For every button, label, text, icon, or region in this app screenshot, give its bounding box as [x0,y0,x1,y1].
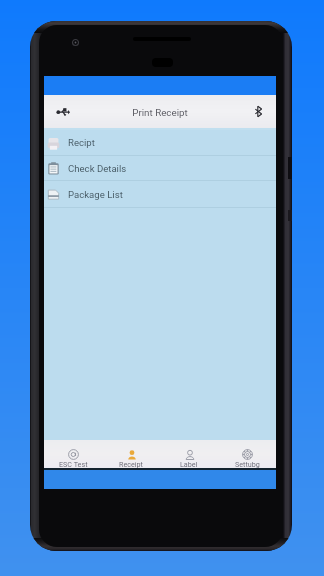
button[interactable]: Receipt [102,440,160,468]
button[interactable]: Package List [44,181,276,207]
staticText: Recipt [68,137,95,148]
staticText: ESC Test [59,460,88,468]
staticText: Receipt [119,460,143,468]
button[interactable]: Recipt [44,130,276,155]
staticText: Package List [68,189,123,200]
button[interactable]: Settubg [218,440,276,468]
staticText: Label [180,460,198,468]
staticText: Check Details [68,163,127,174]
button[interactable]: ESC Test [44,440,102,468]
button[interactable]: Check Details [44,156,276,180]
button[interactable]: Label [160,440,218,468]
staticText: Settubg [235,460,260,468]
button[interactable]: USB connection [49,95,77,128]
button[interactable]: Bluetooth [245,95,271,128]
staticText: Print Receipt [44,107,276,118]
